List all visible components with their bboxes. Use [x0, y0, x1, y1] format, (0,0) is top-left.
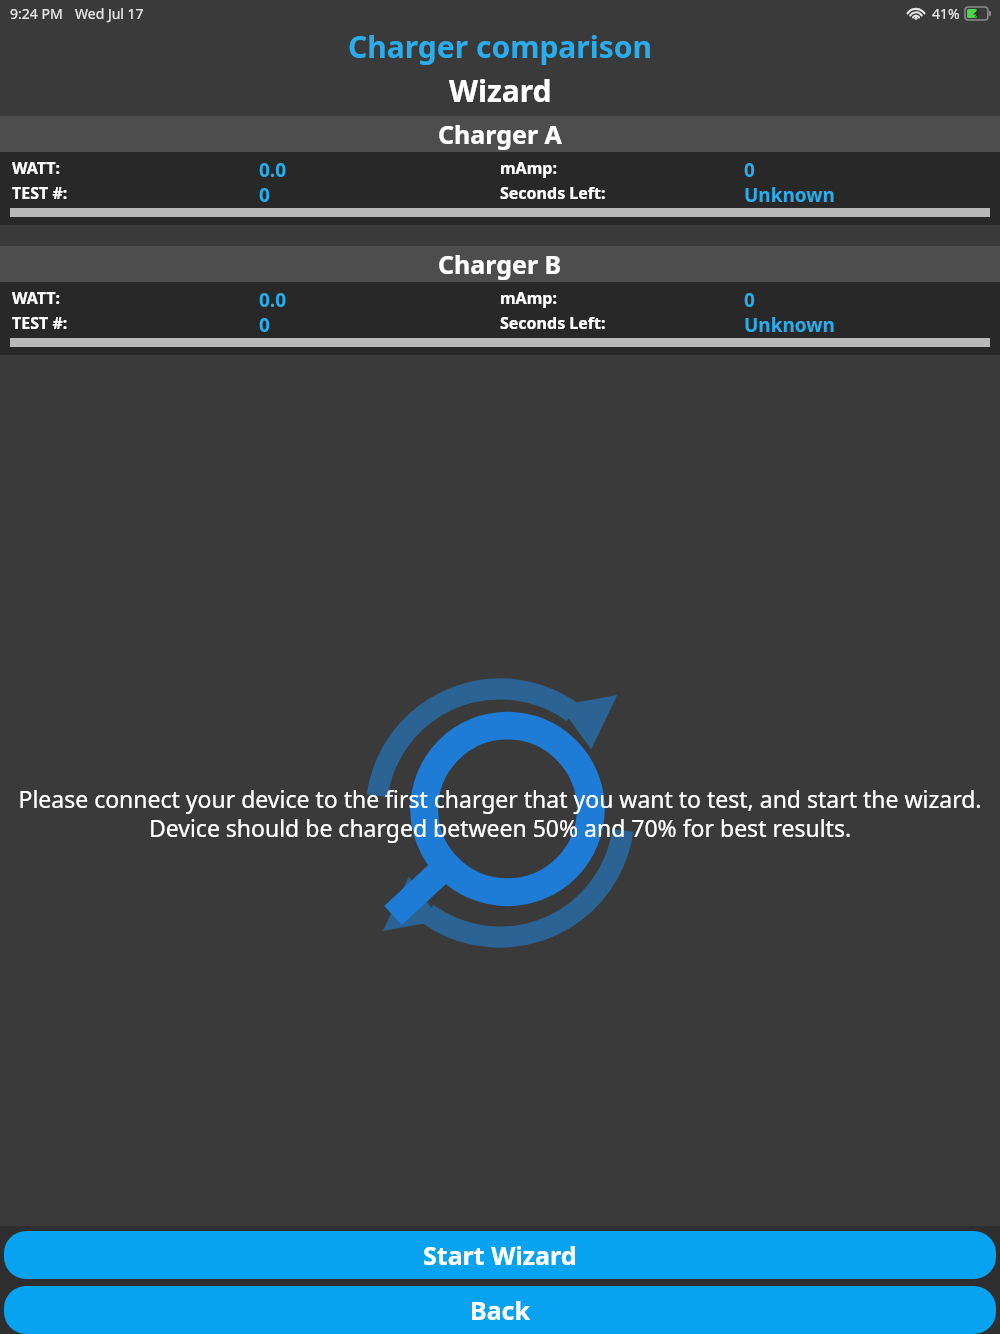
staticText: 9:24 PM	[10, 4, 63, 23]
staticText: 0.0	[259, 287, 287, 308]
staticText: TEST #:	[12, 312, 68, 333]
button[interactable]: Charger A	[0, 116, 1000, 225]
staticText: Please connect your device to the first …	[4, 783, 996, 844]
staticText: mAmp:	[500, 157, 557, 178]
staticText: 0	[744, 287, 755, 308]
staticText: mAmp:	[500, 287, 557, 308]
staticText: 0	[259, 312, 270, 333]
staticText: 0.0	[259, 157, 287, 178]
staticText: 0	[259, 182, 270, 203]
other: Charger comparison wizard	[330, 643, 670, 983]
staticText: Wizard	[449, 70, 552, 111]
staticText: Charger A	[438, 117, 562, 151]
staticText: WATT:	[12, 157, 61, 178]
staticText: Unknown	[744, 182, 835, 203]
staticText: Start Wizard	[423, 1238, 577, 1272]
staticText: Wed Jul 17	[75, 4, 144, 23]
staticText: 0	[744, 157, 755, 178]
staticText: 41%	[932, 4, 960, 23]
staticText: Charger comparison	[348, 26, 653, 67]
staticText: WATT:	[12, 287, 61, 308]
staticText: Seconds Left:	[500, 182, 606, 203]
button[interactable]: Charger B	[0, 246, 1000, 355]
button[interactable]: Start Wizard	[4, 1231, 996, 1279]
staticText: Back	[470, 1293, 531, 1327]
staticText: Unknown	[744, 312, 835, 333]
staticText: Charger B	[438, 247, 562, 281]
button[interactable]: Back	[4, 1286, 996, 1334]
staticText: Seconds Left:	[500, 312, 606, 333]
staticText: TEST #:	[12, 182, 68, 203]
